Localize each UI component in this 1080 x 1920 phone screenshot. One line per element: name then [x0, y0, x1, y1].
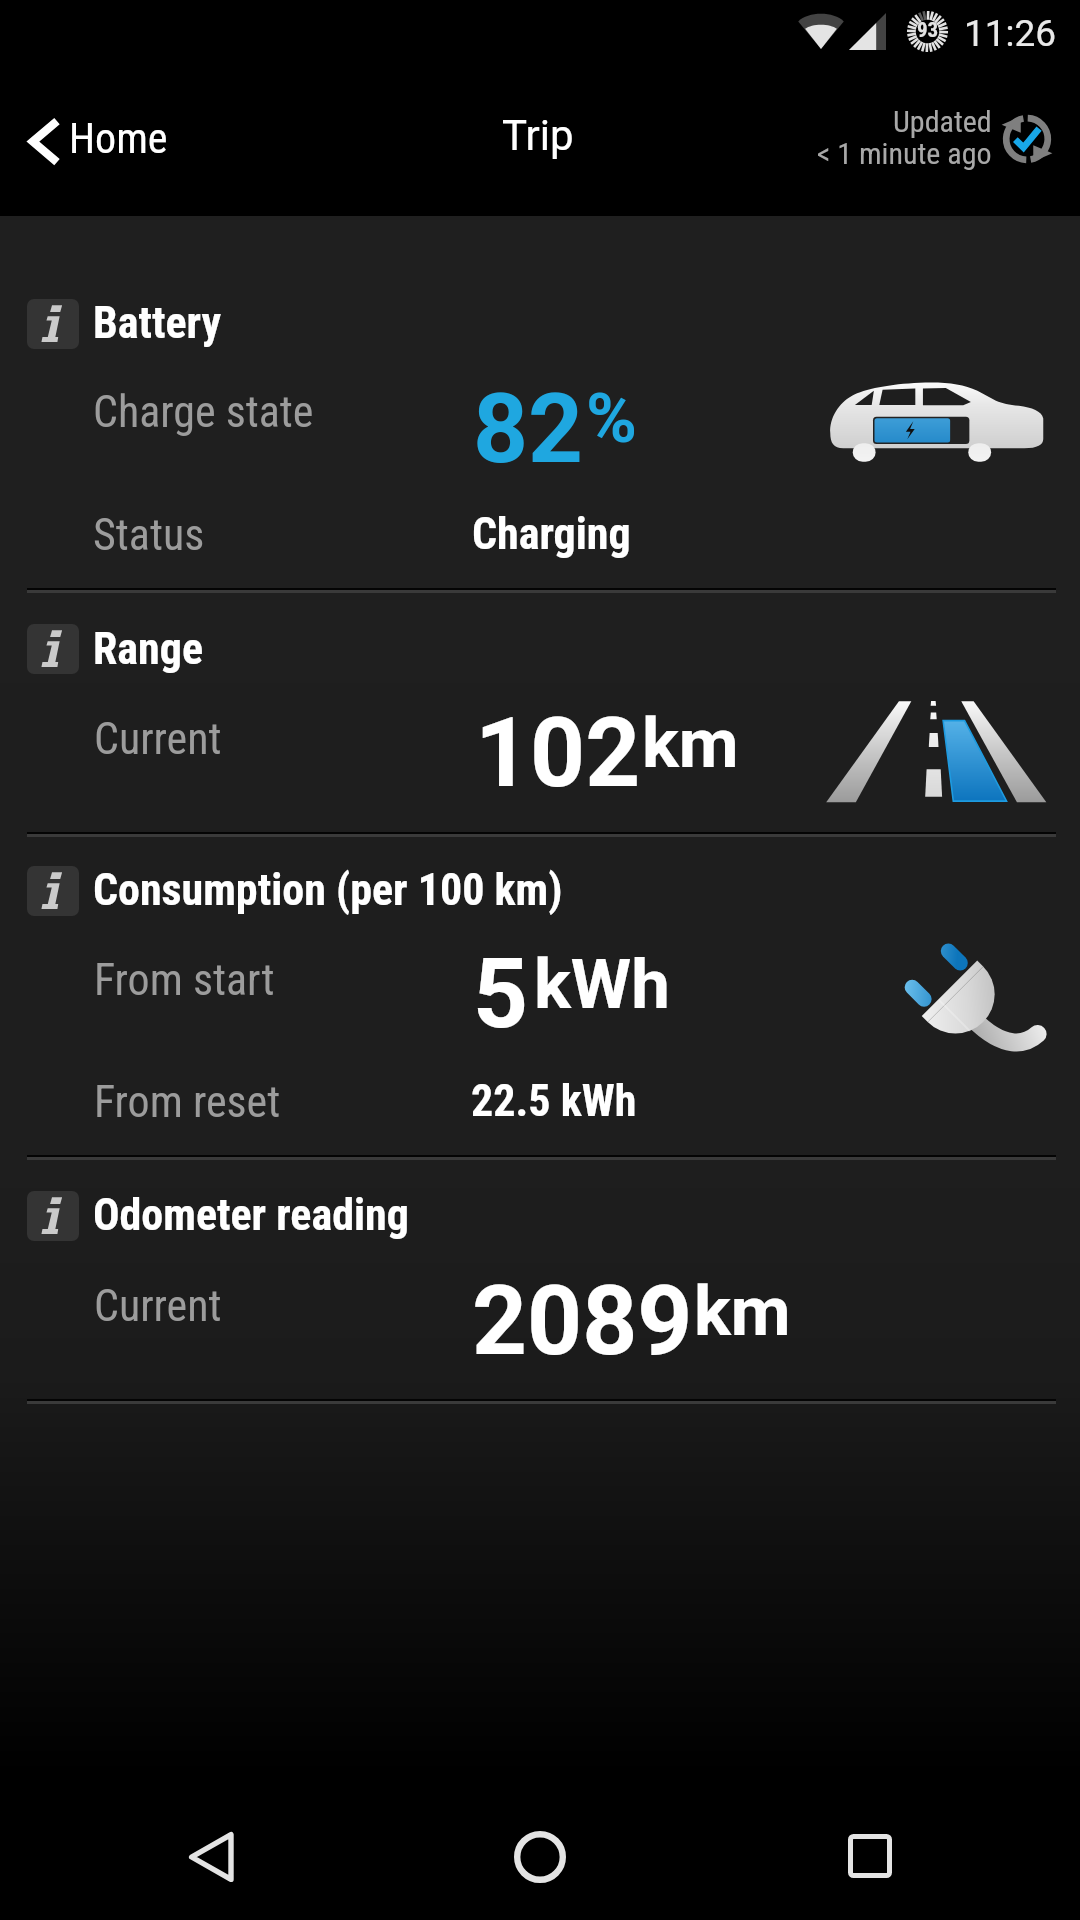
staticText: Home: [69, 114, 168, 163]
staticText: Status: [93, 509, 205, 561]
staticText: Updated: [893, 104, 992, 139]
button[interactable]: Refresh: [995, 107, 1059, 171]
staticText: km: [642, 703, 739, 784]
staticText: 93: [917, 18, 939, 43]
staticText: Battery: [93, 297, 222, 349]
staticText: 102: [475, 697, 641, 810]
staticText: 22.5 kWh: [471, 1075, 637, 1127]
staticText: 5: [473, 938, 529, 1051]
button[interactable]: Back: [120, 1773, 300, 1920]
button[interactable]: Battery info: [27, 299, 79, 349]
button[interactable]: Odometer info: [27, 1191, 79, 1241]
staticText: Charge state: [93, 386, 314, 438]
button[interactable]: Home: [450, 1773, 630, 1920]
button[interactable]: Consumption info: [27, 866, 79, 916]
staticText: From start: [94, 954, 275, 1006]
staticText: kWh: [534, 944, 670, 1025]
button[interactable]: Recent apps: [780, 1773, 960, 1920]
staticText: 11:26: [964, 12, 1057, 55]
staticText: 82: [473, 373, 584, 486]
staticText: Current: [94, 1280, 222, 1332]
button[interactable]: [0, 290, 1080, 358]
staticText: 2089: [472, 1265, 693, 1378]
staticText: %: [586, 378, 638, 459]
staticText: Range: [93, 623, 203, 675]
staticText: Current: [94, 713, 222, 765]
staticText: Trip: [502, 111, 574, 160]
staticText: Charging: [472, 508, 631, 560]
staticText: Consumption (per 100 km): [93, 864, 563, 916]
staticText: From reset: [94, 1076, 281, 1128]
staticText: Odometer reading: [93, 1189, 409, 1241]
staticText: km: [694, 1271, 791, 1352]
button[interactable]: Range info: [27, 624, 79, 674]
staticText: < 1 minute ago: [817, 136, 992, 171]
button[interactable]: Back to Home: [0, 66, 210, 216]
